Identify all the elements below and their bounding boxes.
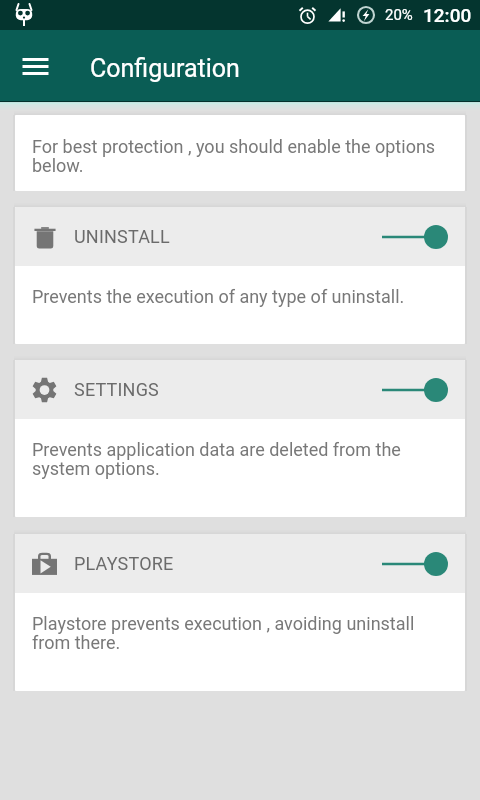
button[interactable]: Toggle PLAYSTORE protection, on: [382, 544, 448, 584]
button[interactable]: SETTINGS: [15, 360, 465, 419]
staticText: Configuration: [90, 54, 240, 83]
button[interactable]: Toggle UNINSTALL protection, on: [382, 217, 448, 257]
staticText: Prevents application data are deleted fr…: [32, 439, 401, 480]
staticText: 20%: [385, 6, 413, 24]
staticText: Playstore prevents execution , avoiding …: [32, 613, 415, 654]
staticText: For best protection , you should enable …: [32, 136, 436, 177]
button[interactable]: Open navigation menu: [11, 42, 59, 90]
button[interactable]: Toggle SETTINGS protection, on: [382, 370, 448, 410]
staticText: SETTINGS: [74, 379, 159, 400]
button[interactable]: UNINSTALL: [15, 207, 465, 266]
button[interactable]: PLAYSTORE: [15, 534, 465, 593]
staticText: UNINSTALL: [74, 226, 170, 247]
staticText: Prevents the execution of any type of un…: [32, 286, 405, 307]
staticText: PLAYSTORE: [74, 553, 174, 574]
staticText: 12:00: [423, 4, 472, 26]
